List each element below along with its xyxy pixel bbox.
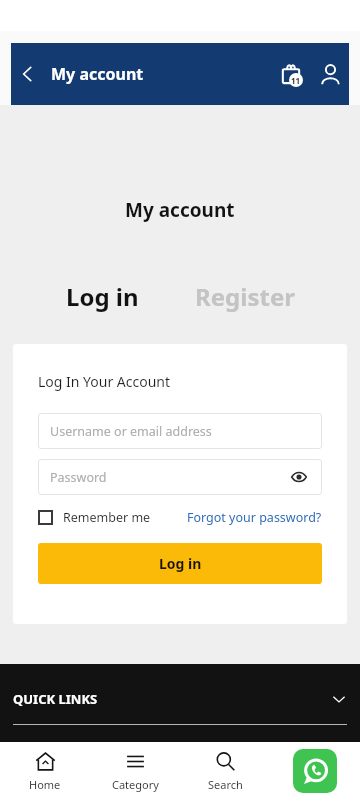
staticText: Category	[112, 777, 159, 792]
staticText: 11	[291, 75, 301, 86]
staticText: Username or email address	[50, 423, 212, 440]
button[interactable]: Search	[180, 742, 270, 800]
button[interactable]: Username or email address	[38, 413, 322, 449]
staticText: QUICK LINKS	[13, 690, 98, 708]
button[interactable]: Cart	[271, 54, 311, 94]
button[interactable]: Password	[38, 459, 322, 495]
button[interactable]: QUICK LINKS	[13, 690, 347, 708]
button[interactable]: Log in	[38, 543, 322, 584]
button[interactable]: Show password	[288, 466, 310, 488]
staticText: Remember me	[63, 509, 151, 526]
button[interactable]: Forgot your password?	[187, 509, 322, 526]
button[interactable]: Back	[11, 57, 45, 91]
staticText: Register	[195, 280, 295, 313]
staticText: My account	[51, 63, 144, 85]
staticText: Log In Your Account	[38, 372, 171, 391]
staticText: Forgot your password?	[187, 509, 322, 526]
button[interactable]: Home	[0, 742, 90, 800]
staticText: Search	[208, 777, 243, 792]
button[interactable]: Category	[90, 742, 180, 800]
button[interactable]: Remember me	[38, 509, 151, 526]
button[interactable]: Account	[311, 55, 349, 93]
staticText: Log in	[159, 554, 202, 573]
staticText: Log in	[66, 280, 139, 313]
button[interactable]: Log in	[60, 276, 145, 317]
button[interactable]: Register	[189, 276, 301, 317]
staticText: Home	[29, 777, 61, 792]
staticText: My account	[125, 197, 235, 223]
button[interactable]: WhatsApp	[293, 749, 337, 793]
staticText: Password	[50, 469, 107, 486]
